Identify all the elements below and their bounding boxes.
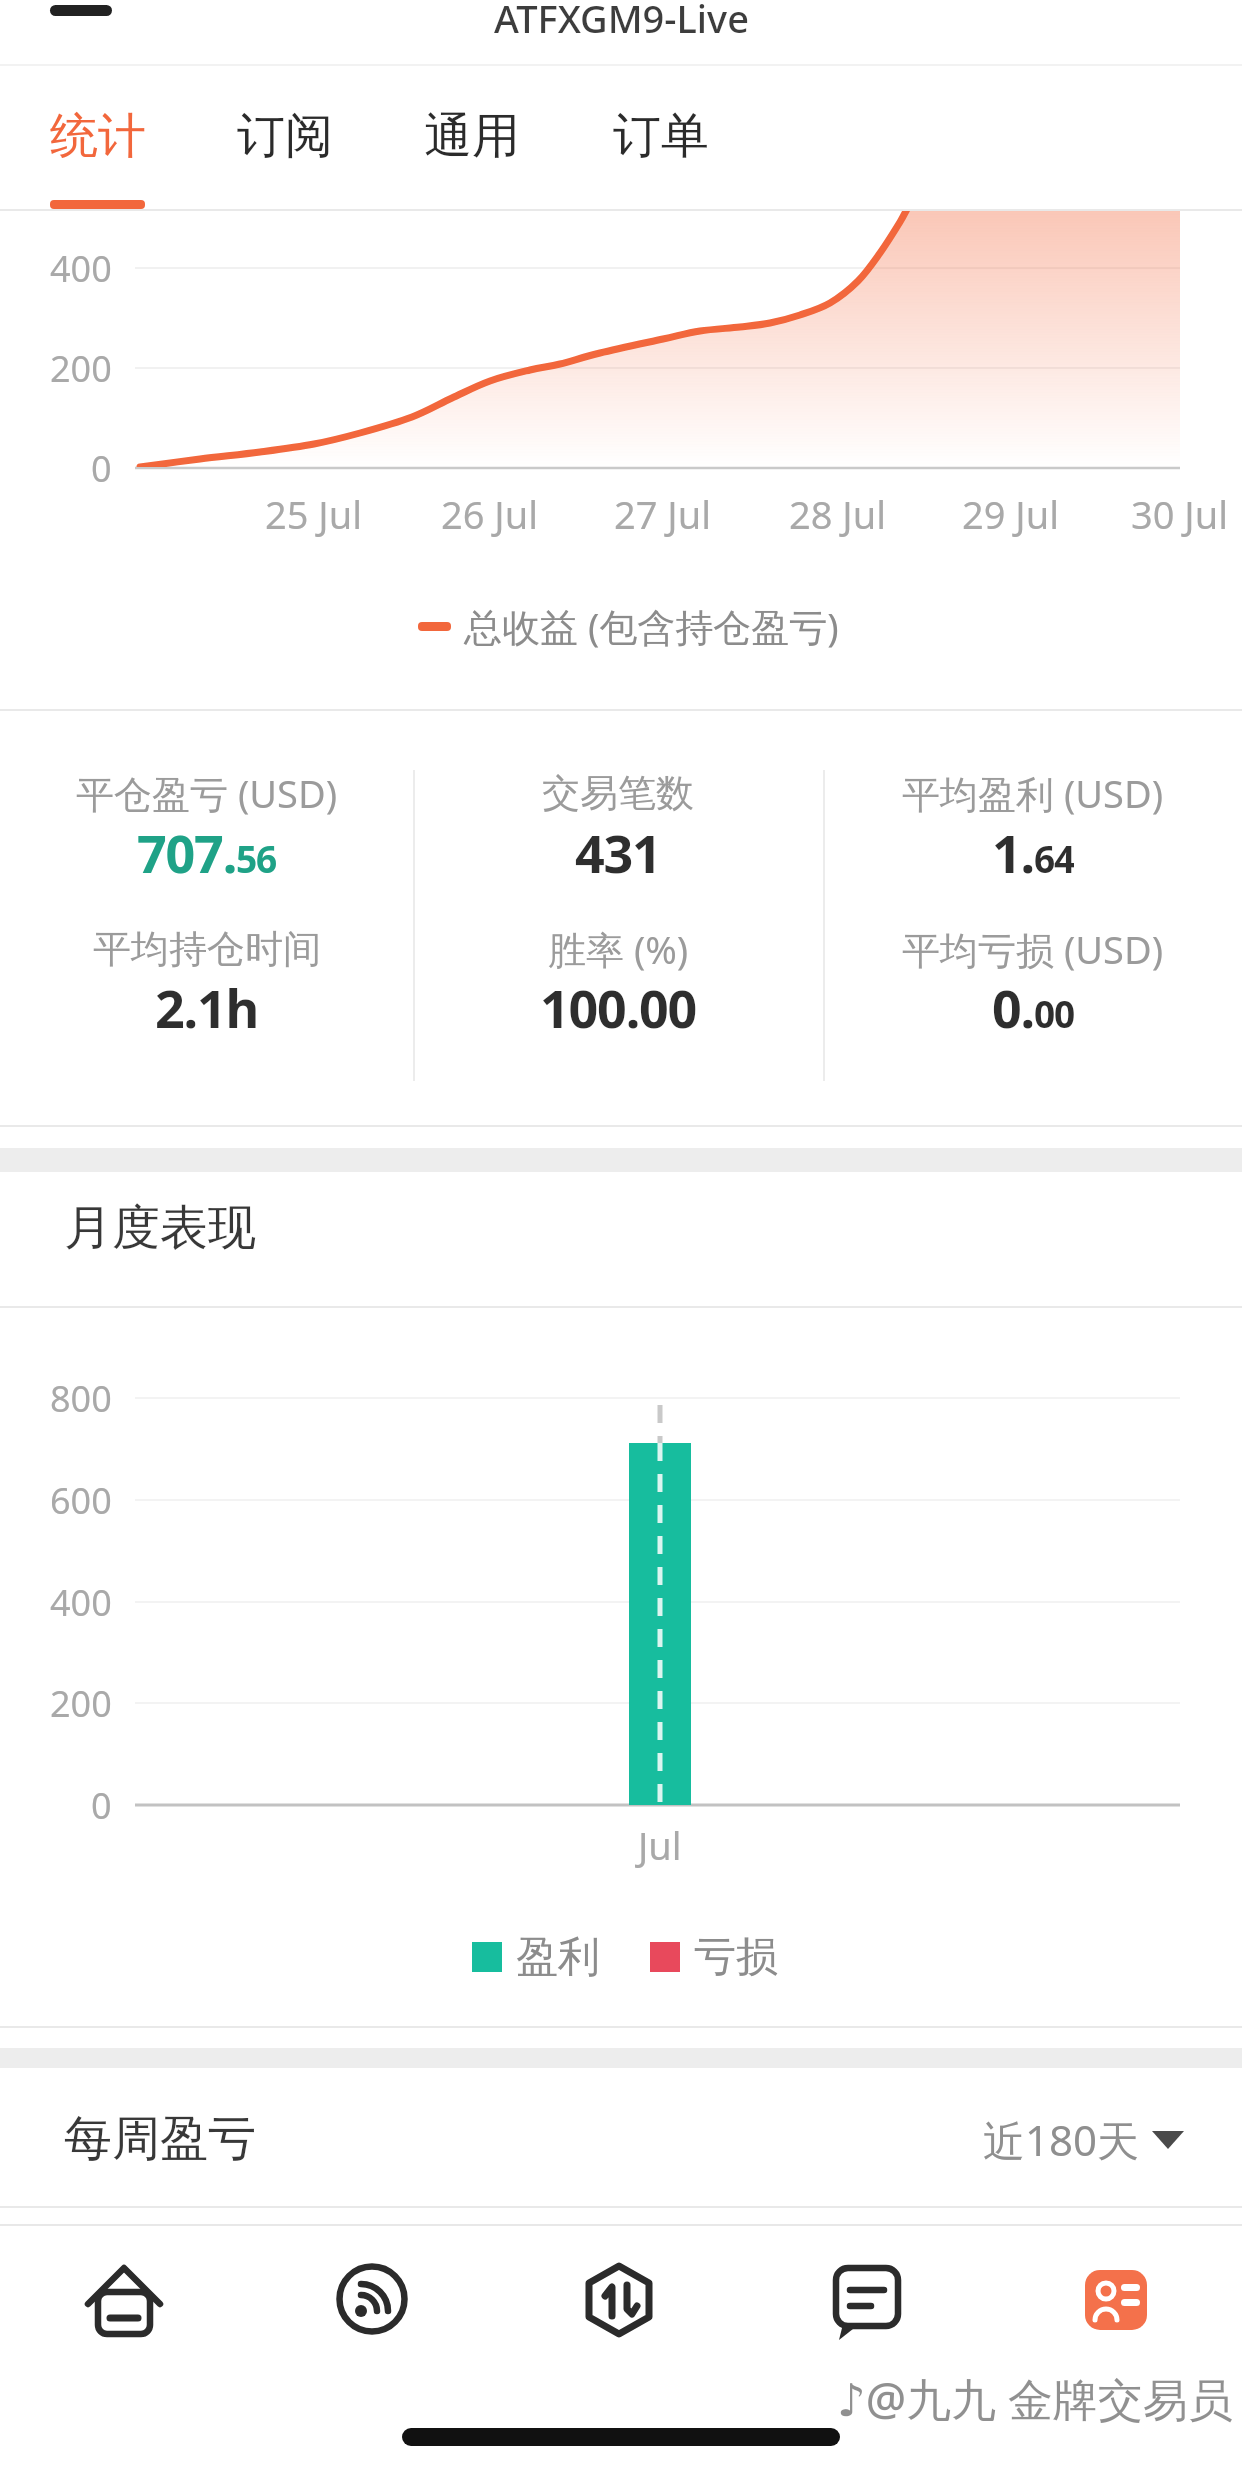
staticText: 25 Jul xyxy=(265,488,363,540)
staticText: 胜率 (%) xyxy=(548,923,689,975)
button[interactable]: 近180天 xyxy=(940,2104,1200,2174)
staticText: 0 xyxy=(91,444,112,493)
staticText: ♪@九九 金牌交易员 xyxy=(837,2368,1233,2429)
staticText: 28 Jul xyxy=(789,488,887,540)
staticText: 0 xyxy=(91,1781,112,1830)
staticText: 订单 xyxy=(613,106,709,166)
staticText: 平均持仓时间 xyxy=(93,925,321,973)
staticText: Jul xyxy=(638,1819,682,1871)
staticText: 1.64 xyxy=(992,817,1074,887)
staticText: 27 Jul xyxy=(614,488,712,540)
button[interactable]: 订单 xyxy=(0,0,96,70)
staticText: 总收益 (包含持仓盈亏) xyxy=(464,600,839,652)
staticText: 29 Jul xyxy=(962,488,1060,540)
staticText: 30 Jul xyxy=(1131,488,1229,540)
staticText: 0.00 xyxy=(992,972,1074,1042)
staticText: 通用 xyxy=(424,106,520,166)
staticText: 每周盈亏 xyxy=(64,2109,256,2169)
staticText: 200 xyxy=(50,1679,112,1728)
staticText: 2.1h xyxy=(155,972,259,1042)
staticText: 交易笔数 xyxy=(542,769,694,817)
staticText: 800 xyxy=(50,1374,112,1423)
staticText: 200 xyxy=(50,344,112,393)
staticText: 平均盈利 (USD) xyxy=(902,767,1164,819)
button[interactable] xyxy=(497,2230,745,2410)
staticText: 100.00 xyxy=(540,972,697,1042)
staticText: 600 xyxy=(50,1476,112,1525)
button[interactable]: 统计 xyxy=(0,0,96,70)
staticText: 平均亏损 (USD) xyxy=(902,923,1164,975)
staticText: 431 xyxy=(575,817,661,887)
staticText: 亏损 xyxy=(694,1931,778,1984)
button[interactable] xyxy=(994,2230,1242,2410)
staticText: 400 xyxy=(50,244,112,293)
staticText: 盈利 xyxy=(516,1931,600,1984)
staticText: 统计 xyxy=(50,106,146,166)
staticText: 订阅 xyxy=(237,106,333,166)
staticText: 400 xyxy=(50,1578,112,1627)
staticText: 26 Jul xyxy=(441,488,539,540)
button[interactable] xyxy=(50,5,112,16)
button[interactable] xyxy=(0,2230,248,2410)
staticText: 月度表现 xyxy=(64,1198,256,1258)
button[interactable]: 通用 xyxy=(0,0,96,70)
staticText: 平仓盈亏 (USD) xyxy=(76,767,338,819)
staticText: 近180天 xyxy=(983,2111,1140,2168)
button[interactable]: 订阅 xyxy=(0,0,96,70)
button[interactable] xyxy=(248,2230,496,2410)
staticText: 707.56 xyxy=(137,817,276,887)
button[interactable] xyxy=(745,2230,993,2410)
staticText: ATFXGM9-Live xyxy=(494,0,749,44)
